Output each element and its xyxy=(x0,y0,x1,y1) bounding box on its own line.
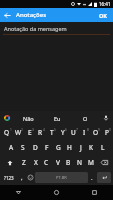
staticText: N xyxy=(77,158,82,167)
button[interactable]: Emoji xyxy=(26,172,35,183)
staticText: V xyxy=(56,158,60,167)
staticText: 8 xyxy=(87,128,89,132)
staticText: , xyxy=(21,174,23,182)
staticText: C xyxy=(44,158,49,167)
button[interactable]: L xyxy=(97,140,108,155)
staticText: G xyxy=(56,143,61,152)
button[interactable]: Voltar xyxy=(0,185,37,200)
staticText: 9 xyxy=(98,128,100,132)
button[interactable]: H xyxy=(64,140,75,155)
staticText: O xyxy=(83,115,88,122)
staticText: A xyxy=(9,143,14,152)
staticText: R xyxy=(38,128,43,137)
button[interactable]: Não xyxy=(14,111,43,125)
staticText: Y xyxy=(61,128,65,137)
button[interactable]: . xyxy=(88,172,96,183)
button[interactable]: M xyxy=(85,155,96,170)
button[interactable]: Q xyxy=(1,125,13,140)
button[interactable]: J xyxy=(75,140,86,155)
staticText: Eu xyxy=(54,115,61,122)
button[interactable]: OK xyxy=(94,8,113,22)
button[interactable]: A xyxy=(5,140,17,155)
button[interactable]: Y xyxy=(57,125,68,140)
staticText: 1 xyxy=(10,128,12,132)
button[interactable]: , xyxy=(17,172,26,183)
staticText: W xyxy=(15,128,22,137)
staticText: Q xyxy=(4,128,10,137)
button[interactable]: C xyxy=(41,155,52,170)
staticText: 3 xyxy=(32,128,34,132)
staticText: ?123 xyxy=(4,175,14,181)
staticText: T xyxy=(50,128,54,137)
button[interactable]: N xyxy=(74,155,85,170)
staticText: 7 xyxy=(76,128,78,132)
button[interactable]: Entrada por voz xyxy=(99,111,113,125)
staticText: 0 xyxy=(109,128,111,132)
button[interactable]: E xyxy=(24,125,35,140)
staticText: B xyxy=(66,158,71,167)
button[interactable]: I xyxy=(79,125,90,140)
staticText: H xyxy=(67,143,72,152)
staticText: P xyxy=(105,128,109,137)
staticText: S xyxy=(21,143,25,152)
staticText: . xyxy=(91,174,93,182)
button[interactable]: Início xyxy=(37,185,75,200)
button[interactable]: Google xyxy=(0,111,14,125)
button[interactable]: Apagar xyxy=(96,155,112,170)
button[interactable]: PT-BR xyxy=(35,172,88,183)
button[interactable]: T xyxy=(46,125,57,140)
staticText: Anotações xyxy=(16,11,47,19)
button[interactable]: Eu xyxy=(43,111,71,125)
button[interactable]: O xyxy=(71,111,99,125)
staticText: J xyxy=(80,143,82,152)
button[interactable]: Enter xyxy=(97,172,111,183)
button[interactable]: K xyxy=(86,140,97,155)
staticText: E xyxy=(28,128,32,137)
button[interactable]: V xyxy=(52,155,63,170)
button[interactable]: Z xyxy=(18,155,30,170)
button[interactable]: O xyxy=(90,125,101,140)
staticText: O xyxy=(93,128,99,137)
button[interactable]: P xyxy=(101,125,112,140)
button[interactable]: B xyxy=(63,155,74,170)
button[interactable]: ?123 xyxy=(1,172,17,183)
staticText: M xyxy=(88,158,94,167)
staticText: 5 xyxy=(54,128,56,132)
staticText: D xyxy=(33,143,38,152)
staticText: L xyxy=(101,143,105,152)
staticText: F xyxy=(45,143,49,152)
button[interactable]: X xyxy=(30,155,41,170)
button[interactable]: W xyxy=(13,125,24,140)
button[interactable]: S xyxy=(17,140,29,155)
button[interactable]: F xyxy=(41,140,53,155)
staticText: X xyxy=(34,158,38,167)
staticText: I xyxy=(83,128,86,137)
staticText: 2 xyxy=(21,128,23,132)
button[interactable]: Recentes xyxy=(75,185,113,200)
staticText: K xyxy=(89,143,94,152)
staticText: PT-BR xyxy=(56,175,67,180)
button[interactable]: D xyxy=(29,140,41,155)
staticText: Anotação da mensagem xyxy=(4,25,67,32)
button[interactable]: Shift xyxy=(1,155,18,170)
button[interactable]: Voltar xyxy=(0,8,14,22)
staticText: Z xyxy=(22,158,26,167)
staticText: 16:41 xyxy=(99,1,111,7)
staticText: U xyxy=(71,128,76,137)
staticText: OK xyxy=(99,12,108,19)
staticText: 6 xyxy=(65,128,67,132)
button[interactable]: U xyxy=(68,125,79,140)
staticText: 4 xyxy=(43,128,45,132)
button[interactable]: G xyxy=(53,140,64,155)
button[interactable]: R xyxy=(35,125,46,140)
staticText: Não xyxy=(23,115,34,122)
